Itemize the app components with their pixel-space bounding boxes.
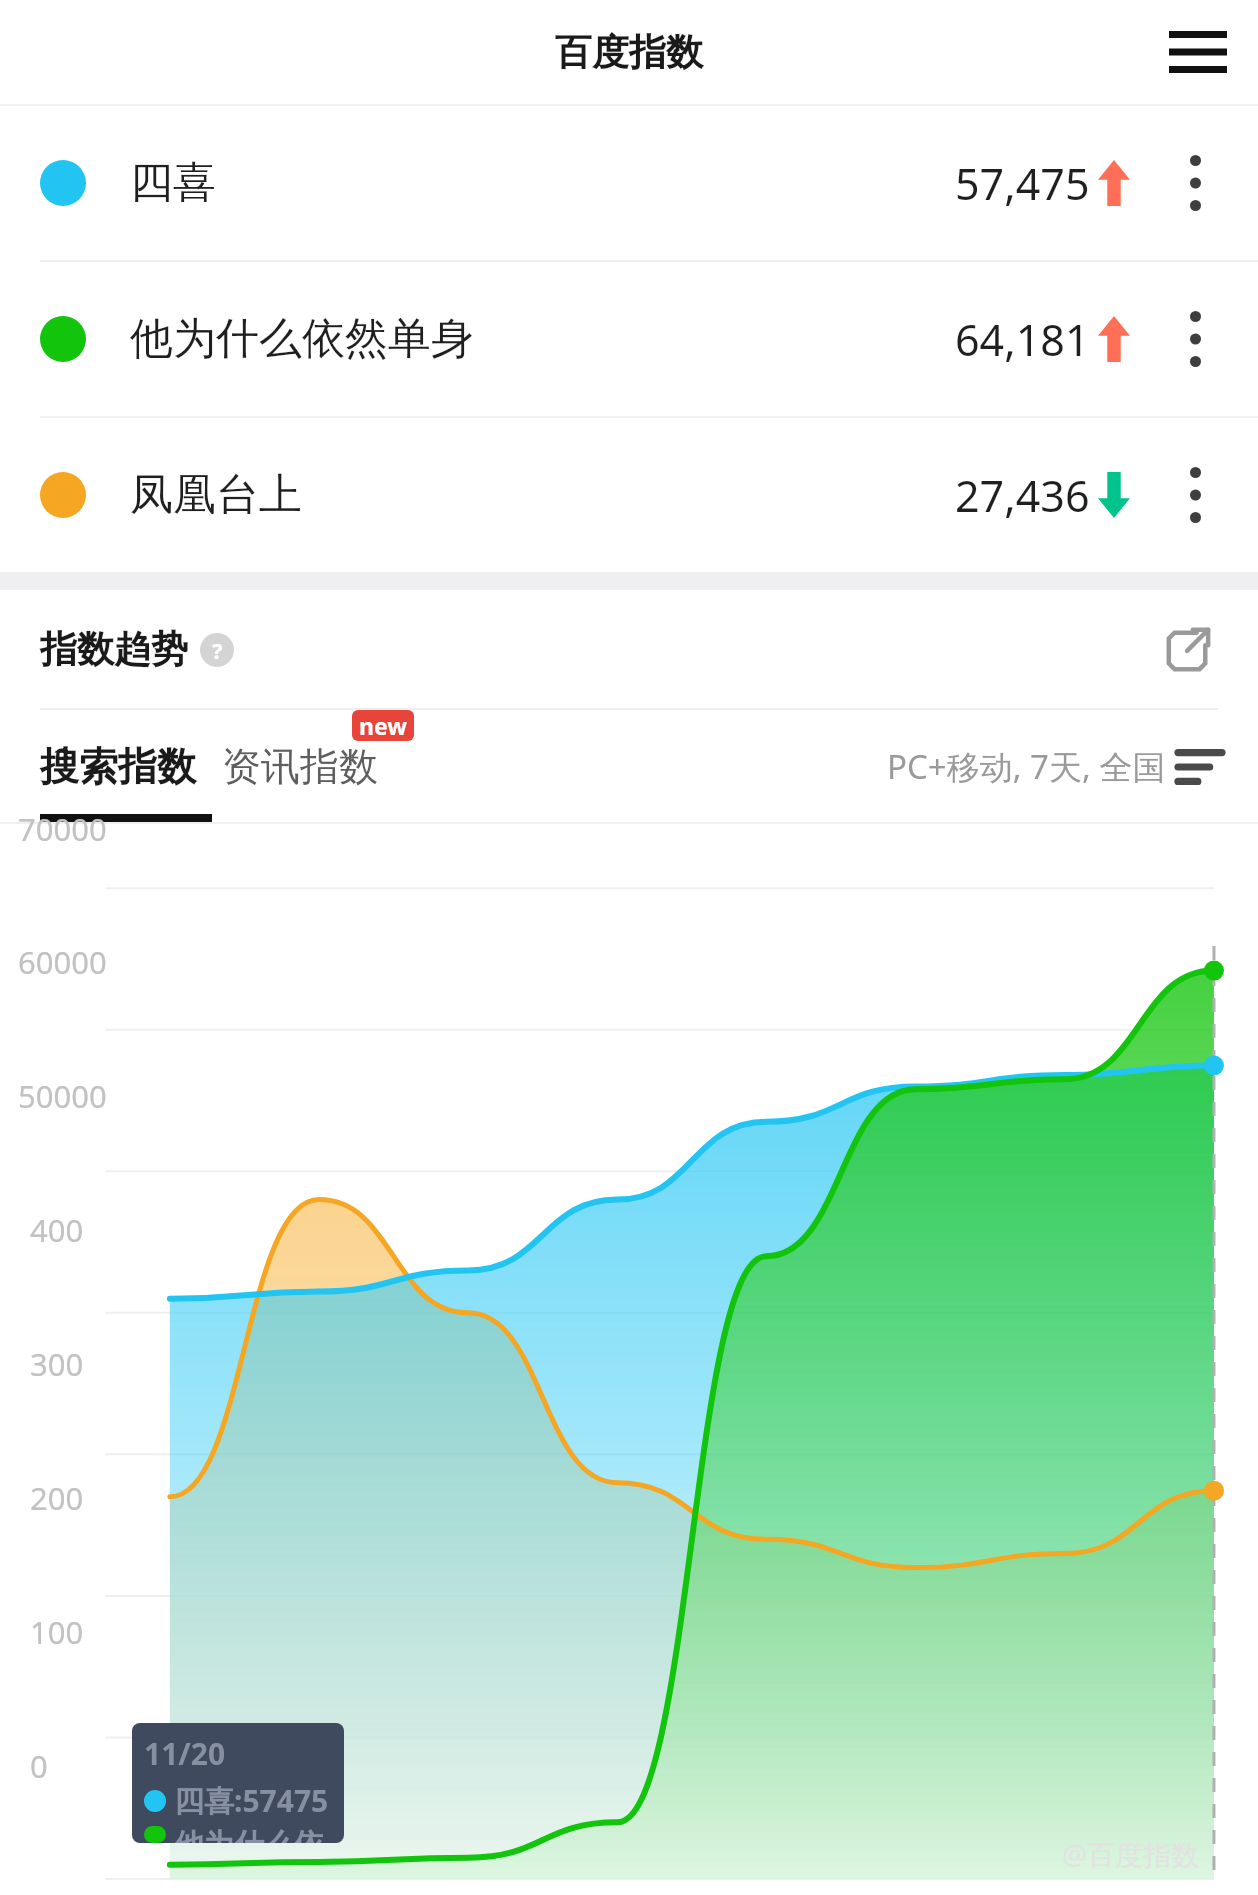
- staticText: 资讯指数: [222, 742, 378, 791]
- button[interactable]: 凤凰台上: [0, 418, 1258, 572]
- staticText: new: [359, 710, 407, 741]
- button[interactable]: 资讯指数: [222, 734, 378, 799]
- staticText: 400: [30, 1209, 84, 1251]
- staticText: 指数趋势: [40, 626, 188, 673]
- button[interactable]: More options: [1160, 304, 1230, 374]
- staticText: 四喜: [130, 156, 216, 210]
- staticText: @百度指数: [1062, 1835, 1200, 1873]
- button[interactable]: Menu: [1154, 8, 1242, 96]
- staticText: 他为什么依然单身:64181: [174, 1826, 344, 1843]
- staticText: PC+移动, 7天, 全国: [887, 744, 1166, 789]
- button[interactable]: More options: [1160, 460, 1230, 530]
- button[interactable]: 四喜: [0, 106, 1258, 260]
- button[interactable]: Open trend detail: [1154, 615, 1222, 683]
- button[interactable]: More options: [1160, 148, 1230, 218]
- button[interactable]: 指数趋势: [40, 626, 234, 673]
- staticText: 他为什么依然单身: [130, 312, 474, 366]
- staticText: 60000: [18, 941, 107, 983]
- staticText: 11/20: [144, 1733, 226, 1774]
- staticText: 50000: [18, 1075, 107, 1117]
- staticText: 凤凰台上: [130, 468, 302, 522]
- staticText: 四喜:57475: [174, 1780, 329, 1821]
- staticText: 300: [30, 1343, 84, 1385]
- button[interactable]: 11/20: [132, 1723, 344, 1843]
- button[interactable]: PC+移动, 7天, 全国: [887, 744, 1222, 789]
- staticText: 搜索指数: [40, 742, 196, 791]
- staticText: ?: [212, 635, 223, 665]
- staticText: 100: [30, 1611, 84, 1653]
- staticText: 百度指数: [555, 29, 703, 76]
- staticText: 70000: [18, 808, 107, 850]
- staticText: 64,181: [955, 310, 1090, 369]
- button[interactable]: 他为什么依然单身: [0, 262, 1258, 416]
- button[interactable]: 搜索指数: [40, 734, 196, 799]
- staticText: 27,436: [955, 466, 1090, 525]
- staticText: 57,475: [955, 154, 1090, 213]
- staticText: 200: [30, 1477, 84, 1519]
- staticText: 0: [30, 1745, 48, 1787]
